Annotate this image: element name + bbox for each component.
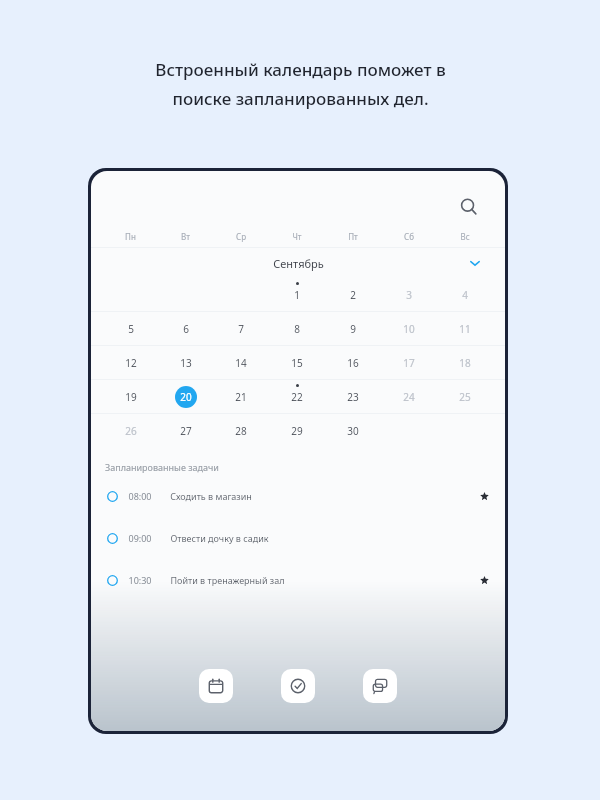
staticText: 8 [294, 322, 300, 336]
staticText: 5 [128, 322, 134, 336]
button[interactable]: 25 [437, 380, 493, 413]
staticText: 21 [235, 390, 247, 404]
staticText: 12 [125, 356, 137, 370]
staticText: 6 [183, 322, 189, 336]
staticText: 4 [462, 288, 468, 302]
button[interactable]: 8 [269, 312, 325, 345]
button[interactable]: 26 [103, 414, 158, 447]
button[interactable]: 10:30 [91, 571, 505, 589]
staticText: 14 [235, 356, 247, 370]
button[interactable]: 1 [269, 278, 325, 311]
staticText: 08:00 [128, 490, 152, 502]
staticText: Запланированные задачи [105, 461, 219, 473]
staticText: Пн [125, 231, 136, 242]
staticText: 7 [238, 322, 244, 336]
staticText: 2 [350, 288, 356, 302]
button[interactable]: 15 [269, 346, 325, 379]
staticText: 10:30 [128, 574, 152, 586]
button[interactable]: 24 [381, 380, 437, 413]
staticText: Сб [404, 231, 414, 242]
staticText: 26 [125, 424, 137, 438]
button[interactable]: 7 [213, 312, 269, 345]
staticText: Ср [236, 231, 246, 242]
staticText: 20 [180, 390, 192, 404]
staticText: Чт [292, 231, 302, 242]
staticText: Вт [181, 231, 190, 242]
button[interactable]: 9 [325, 312, 381, 345]
staticText: 29 [291, 424, 303, 438]
staticText: Сентябрь [273, 256, 324, 271]
button[interactable]: 6 [158, 312, 213, 345]
button[interactable]: 14 [213, 346, 269, 379]
button[interactable]: Календарь [199, 669, 233, 703]
button[interactable]: 4 [437, 278, 493, 311]
button[interactable]: 22 [269, 380, 325, 413]
button[interactable]: 20 [158, 380, 213, 413]
staticText: 18 [459, 356, 471, 370]
button[interactable]: 08:00 [91, 487, 505, 505]
button[interactable]: 27 [158, 414, 213, 447]
button[interactable]: 23 [325, 380, 381, 413]
button[interactable]: 11 [437, 312, 493, 345]
button[interactable]: 5 [103, 312, 158, 345]
staticText: 16 [347, 356, 359, 370]
staticText: 17 [403, 356, 415, 370]
button[interactable]: 30 [325, 414, 381, 447]
staticText: 25 [459, 390, 471, 404]
staticText: 10 [403, 322, 415, 336]
button[interactable]: 09:00 [91, 529, 505, 547]
staticText: 24 [403, 390, 415, 404]
staticText: 3 [406, 288, 412, 302]
button[interactable]: 16 [325, 346, 381, 379]
staticText: Пт [348, 231, 358, 242]
button[interactable]: 12 [103, 346, 158, 379]
staticText: 1 [294, 288, 300, 302]
button[interactable]: Поиск [455, 193, 483, 221]
button[interactable]: 21 [213, 380, 269, 413]
button[interactable]: 18 [437, 346, 493, 379]
staticText: Отвести дочку в садик [170, 532, 269, 544]
button[interactable]: Задачи [281, 669, 315, 703]
button[interactable]: 10 [381, 312, 437, 345]
button[interactable]: Сообщения [363, 669, 397, 703]
staticText: 22 [291, 390, 303, 404]
button[interactable]: 29 [269, 414, 325, 447]
button[interactable]: 19 [103, 380, 158, 413]
button[interactable]: 3 [381, 278, 437, 311]
staticText: 19 [125, 390, 137, 404]
staticText: Сходить в магазин [170, 490, 252, 502]
staticText: 30 [347, 424, 359, 438]
staticText: Встроенный календарь поможет в [155, 58, 446, 81]
button[interactable]: 13 [158, 346, 213, 379]
staticText: 11 [459, 322, 471, 336]
button[interactable]: Развернуть месяц [465, 253, 485, 273]
staticText: 13 [180, 356, 192, 370]
button[interactable]: 17 [381, 346, 437, 379]
staticText: 15 [291, 356, 303, 370]
staticText: 23 [347, 390, 359, 404]
staticText: Вс [460, 231, 470, 242]
button[interactable]: 28 [213, 414, 269, 447]
staticText: Пойти в тренажерный зал [170, 574, 285, 586]
staticText: 28 [235, 424, 247, 438]
staticText: поиске запланированных дел. [172, 87, 429, 110]
button[interactable]: 2 [325, 278, 381, 311]
staticText: 09:00 [128, 532, 152, 544]
staticText: 27 [180, 424, 192, 438]
staticText: 9 [350, 322, 356, 336]
